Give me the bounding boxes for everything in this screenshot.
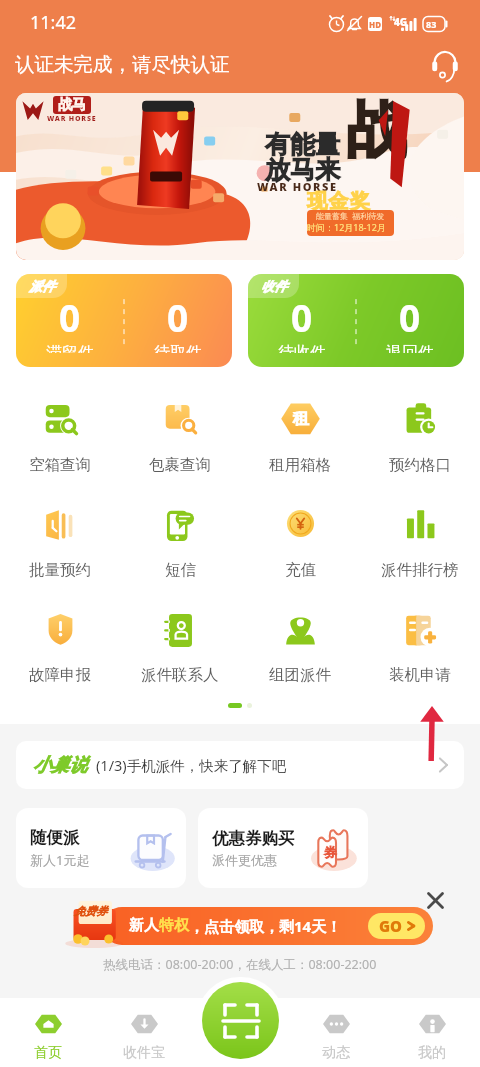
staticText: 0	[291, 292, 313, 342]
button[interactable]: 战	[16, 93, 464, 260]
button[interactable]: 我的	[384, 999, 480, 1067]
button[interactable]: 随便派	[16, 808, 186, 888]
button[interactable]: 短信	[120, 500, 240, 605]
button[interactable]: 故障申报	[0, 605, 120, 710]
button[interactable]: 批量预约	[0, 500, 120, 605]
staticText: GO	[379, 916, 403, 936]
button[interactable]: 预约格口	[360, 395, 480, 500]
button[interactable]: 收件宝	[96, 999, 192, 1067]
button[interactable]: 小巢说	[16, 741, 464, 789]
staticText: 退回件	[386, 343, 434, 353]
staticText: 时间：12月18-12月31	[307, 221, 394, 236]
button[interactable]: 首页	[0, 999, 96, 1067]
button[interactable]: 派件联系人	[120, 605, 240, 710]
staticText: 空箱查询	[29, 455, 91, 475]
staticText: 派件排行榜	[381, 560, 459, 580]
staticText: 待收件	[278, 343, 326, 353]
staticText: 11:42	[30, 10, 77, 35]
staticText: 待取件	[154, 343, 202, 353]
staticText: 4G	[394, 15, 408, 29]
staticText: 租	[293, 409, 309, 429]
staticText: 短信	[165, 560, 196, 580]
staticText: 装机申请	[389, 665, 451, 685]
staticText: 新人	[129, 916, 159, 935]
staticText: 0	[167, 292, 189, 342]
staticText: 特权	[159, 916, 189, 935]
staticText: 动态	[322, 1044, 350, 1062]
button[interactable]: 优惠券购买	[198, 808, 368, 888]
staticText: 预约格口	[389, 455, 451, 475]
staticText: 首页	[34, 1044, 62, 1062]
staticText: 充值	[285, 560, 316, 580]
button[interactable]: 动态	[288, 999, 384, 1067]
staticText: 批量预约	[29, 560, 91, 580]
staticText: 派件联系人	[141, 665, 219, 685]
button[interactable]: 组团派件	[240, 605, 360, 710]
staticText: WAR HORSE	[257, 179, 338, 194]
staticText: 认证未完成，请尽快认证	[15, 52, 230, 77]
button[interactable]: 在线客服	[426, 45, 464, 83]
staticText: 热线电话：08:00-20:00，在线人工：08:00-22:00	[103, 956, 377, 973]
staticText: 租用箱格	[269, 455, 331, 475]
staticText: 有能量	[265, 129, 340, 160]
button[interactable]: 装机申请	[360, 605, 480, 710]
button[interactable]: 派件排行榜	[360, 500, 480, 605]
staticText: 战马	[58, 96, 86, 114]
staticText: 故障申报	[29, 665, 91, 685]
staticText: 免费券	[74, 904, 107, 918]
staticText: 优惠券购买	[212, 828, 295, 849]
staticText: 小巢说	[33, 754, 87, 777]
staticText: ，点击领取，剩14天！	[189, 916, 342, 936]
button[interactable]: 空箱查询	[0, 395, 120, 500]
staticText: 滞留件	[46, 343, 94, 353]
button[interactable]: 派件	[16, 274, 232, 367]
button[interactable]: 收件	[248, 274, 464, 367]
staticText: 派件更优惠	[212, 852, 277, 868]
staticText: 战	[346, 93, 406, 169]
staticText: 我的	[418, 1044, 446, 1062]
staticText: 收件宝	[123, 1044, 165, 1062]
button[interactable]: 租	[240, 395, 360, 500]
staticText: 新人1元起	[30, 851, 90, 869]
staticText: 现金奖	[307, 189, 372, 214]
staticText: 收件	[261, 278, 287, 294]
staticText: 包裹查询	[149, 455, 211, 475]
staticText: 0	[59, 292, 81, 342]
staticText: 派件	[29, 278, 55, 294]
staticText: (1/3)手机派件，快来了解下吧	[96, 755, 287, 775]
staticText: 83	[426, 18, 437, 30]
button[interactable]: 包裹查询	[120, 395, 240, 500]
staticText: 券	[324, 844, 337, 860]
staticText: 能量蓄集 福利待发	[316, 210, 385, 221]
button[interactable]: 充值	[240, 500, 360, 605]
button[interactable]: 新人	[103, 907, 433, 945]
staticText: WAR HORSE	[47, 114, 97, 124]
staticText: HD	[369, 19, 381, 30]
staticText: 随便派	[30, 827, 80, 848]
staticText: 放马来	[265, 154, 340, 185]
staticText: 0	[399, 292, 421, 342]
button[interactable]: 扫一扫	[202, 982, 279, 1059]
staticText: 组团派件	[269, 665, 331, 685]
button[interactable]: 关闭	[419, 884, 451, 916]
